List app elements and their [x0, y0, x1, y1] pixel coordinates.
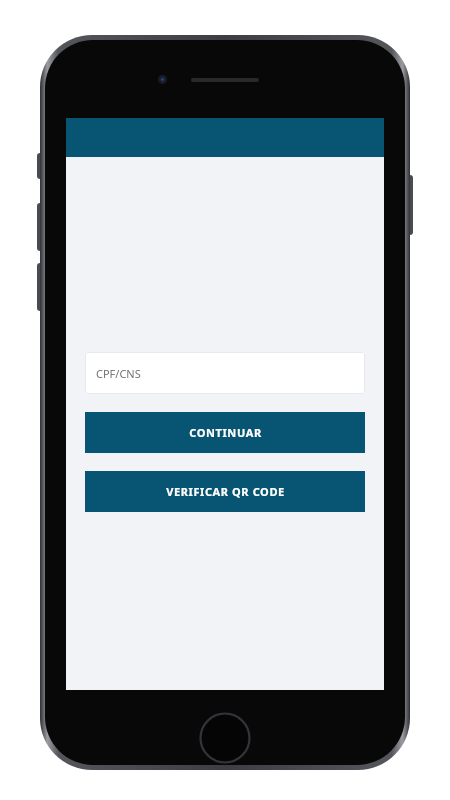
staticText: VERIFICAR QR CODE — [166, 484, 285, 499]
staticText: CPF/CNS — [96, 366, 141, 381]
button[interactable]: CPF/CNS — [85, 352, 365, 394]
button[interactable]: CONTINUAR — [85, 412, 365, 453]
button[interactable]: VERIFICAR QR CODE — [85, 471, 365, 512]
staticText: CONTINUAR — [189, 425, 262, 440]
